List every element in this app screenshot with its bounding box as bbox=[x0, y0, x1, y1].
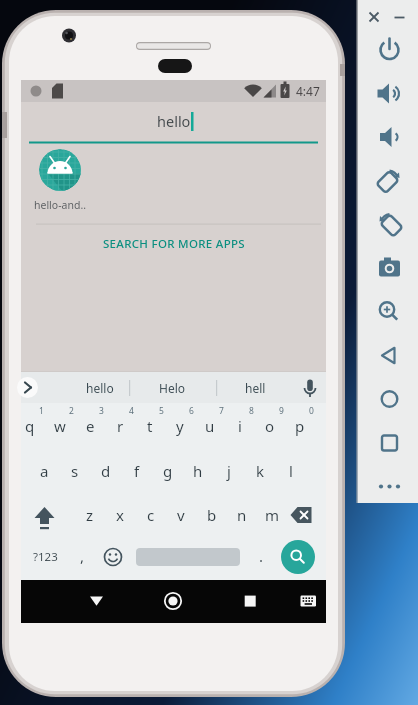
button[interactable]: j bbox=[215, 460, 243, 482]
button[interactable]: z bbox=[76, 504, 104, 526]
button[interactable] bbox=[374, 339, 405, 370]
button[interactable]: 4:47 bbox=[290, 81, 326, 100]
button[interactable]: e bbox=[76, 415, 104, 437]
button[interactable]: SEARCH FOR MORE APPS bbox=[21, 233, 326, 255]
staticText: 8 bbox=[249, 405, 254, 417]
staticText: t bbox=[147, 416, 153, 436]
staticText: l bbox=[289, 461, 293, 481]
button[interactable]: c bbox=[137, 504, 165, 526]
button[interactable]: hello bbox=[65, 374, 135, 402]
staticText: 4:47 bbox=[296, 83, 320, 99]
staticText: 1 bbox=[39, 405, 44, 417]
button[interactable]: hello-and.. bbox=[34, 197, 100, 213]
button[interactable] bbox=[374, 252, 405, 283]
button[interactable] bbox=[374, 78, 405, 109]
button[interactable]: p bbox=[286, 415, 314, 437]
button[interactable]: l bbox=[277, 460, 305, 482]
button[interactable]: w bbox=[46, 415, 74, 437]
staticText: d bbox=[101, 461, 111, 481]
button[interactable]: ?123 bbox=[29, 547, 61, 567]
button[interactable] bbox=[32, 504, 58, 530]
button[interactable] bbox=[374, 34, 405, 65]
button[interactable]: d bbox=[92, 460, 120, 482]
button[interactable]: m bbox=[258, 504, 286, 526]
button[interactable]: x bbox=[106, 504, 134, 526]
staticText: h bbox=[193, 461, 203, 481]
button[interactable]: hello bbox=[21, 109, 326, 133]
button[interactable]: u bbox=[196, 415, 224, 437]
button[interactable]: . bbox=[255, 546, 267, 566]
button[interactable] bbox=[21, 374, 43, 402]
button[interactable] bbox=[374, 383, 405, 414]
staticText: j bbox=[227, 461, 231, 481]
button[interactable] bbox=[281, 540, 315, 574]
staticText: 5 bbox=[159, 405, 164, 417]
staticText: k bbox=[256, 461, 265, 481]
staticText: s bbox=[71, 461, 79, 481]
button[interactable]: f bbox=[123, 460, 151, 482]
button[interactable] bbox=[236, 588, 264, 614]
staticText: 4 bbox=[129, 405, 134, 417]
staticText: hello-and.. bbox=[34, 198, 87, 212]
button[interactable] bbox=[39, 149, 81, 191]
button[interactable] bbox=[374, 296, 405, 327]
staticText: Helo bbox=[159, 380, 186, 396]
button[interactable]: o bbox=[256, 415, 284, 437]
button[interactable]: r bbox=[106, 415, 134, 437]
button[interactable] bbox=[374, 121, 405, 152]
button[interactable]: g bbox=[154, 460, 182, 482]
button[interactable] bbox=[288, 504, 316, 528]
staticText: y bbox=[176, 416, 184, 436]
staticText: m bbox=[265, 505, 280, 525]
button[interactable]: t bbox=[136, 415, 164, 437]
button[interactable]: q bbox=[16, 415, 44, 437]
button[interactable] bbox=[374, 470, 405, 501]
staticText: o bbox=[265, 416, 275, 436]
staticText: SEARCH FOR MORE APPS bbox=[103, 236, 245, 252]
button[interactable] bbox=[103, 546, 123, 568]
staticText: 3 bbox=[99, 405, 104, 417]
staticText: r bbox=[117, 416, 124, 436]
staticText: ?123 bbox=[33, 549, 58, 565]
button[interactable]: a bbox=[30, 460, 58, 482]
staticText: g bbox=[163, 461, 173, 481]
staticText: hello bbox=[157, 111, 191, 131]
button[interactable]: s bbox=[61, 460, 89, 482]
button[interactable]: , bbox=[76, 546, 88, 566]
button[interactable]: k bbox=[246, 460, 274, 482]
button[interactable] bbox=[296, 374, 324, 402]
button[interactable] bbox=[294, 588, 322, 614]
staticText: i bbox=[238, 416, 242, 436]
staticText: f bbox=[134, 461, 140, 481]
button[interactable] bbox=[374, 208, 405, 239]
staticText: hello bbox=[86, 380, 114, 396]
staticText: b bbox=[207, 505, 217, 525]
staticText: . bbox=[259, 546, 264, 566]
staticText: u bbox=[205, 416, 215, 436]
staticText: 7 bbox=[219, 405, 224, 417]
staticText: 0 bbox=[309, 405, 314, 417]
button[interactable]: i bbox=[226, 415, 254, 437]
button[interactable]: y bbox=[166, 415, 194, 437]
button[interactable]: b bbox=[198, 504, 226, 526]
staticText: w bbox=[54, 416, 66, 436]
staticText: a bbox=[40, 461, 49, 481]
staticText: z bbox=[86, 505, 94, 525]
button[interactable] bbox=[374, 426, 405, 457]
button[interactable]: hell bbox=[220, 374, 290, 402]
staticText: e bbox=[86, 416, 95, 436]
staticText: v bbox=[177, 505, 185, 525]
staticText: p bbox=[295, 416, 305, 436]
staticText: q bbox=[25, 416, 35, 436]
staticText: 2 bbox=[69, 405, 74, 417]
button[interactable] bbox=[82, 588, 110, 614]
button[interactable] bbox=[159, 588, 187, 614]
button[interactable]: v bbox=[167, 504, 195, 526]
button[interactable]: Helo bbox=[137, 374, 207, 402]
staticText: c bbox=[147, 505, 155, 525]
staticText: 9 bbox=[279, 405, 284, 417]
button[interactable]: h bbox=[184, 460, 212, 482]
button[interactable]: n bbox=[228, 504, 256, 526]
button[interactable] bbox=[374, 165, 405, 196]
